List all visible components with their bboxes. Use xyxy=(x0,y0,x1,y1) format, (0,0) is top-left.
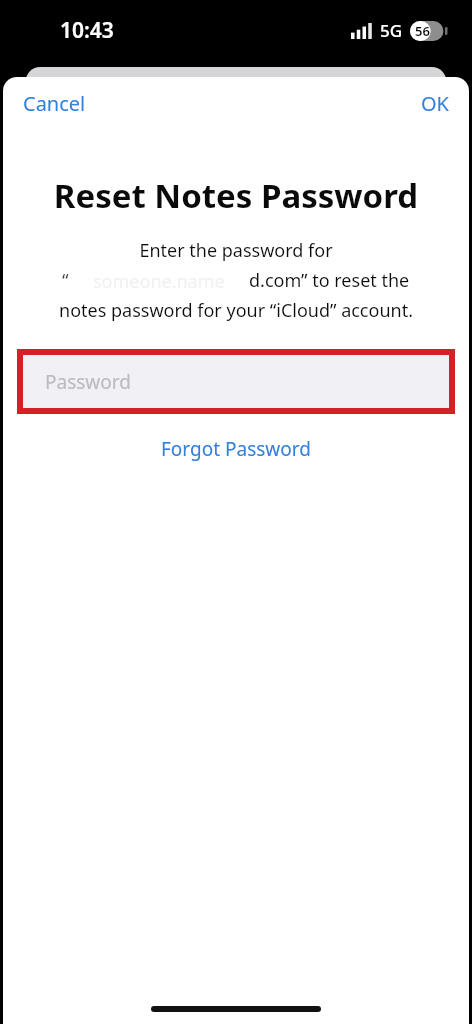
button[interactable]: Cancel xyxy=(3,80,106,127)
staticText: “ xyxy=(62,268,69,293)
staticText: Password xyxy=(45,369,131,395)
other: Cellular signal xyxy=(351,23,373,39)
staticText: 10:43 xyxy=(60,16,114,45)
staticText: Reset Notes Password xyxy=(3,173,469,218)
staticText: OK xyxy=(421,90,449,117)
button[interactable]: Forgot Password xyxy=(141,430,331,468)
staticText: someone.name xyxy=(93,269,225,293)
staticText: 56 xyxy=(415,22,430,40)
other: Battery 56 percent xyxy=(410,21,448,41)
staticText: Cancel xyxy=(23,90,86,117)
staticText: d.com” to reset the xyxy=(249,268,410,293)
staticText: Forgot Password xyxy=(161,436,311,462)
button[interactable]: OK xyxy=(401,80,469,127)
staticText: Enter the password for xyxy=(3,238,469,263)
staticText: notes password for your “iCloud” account… xyxy=(3,298,469,323)
button[interactable]: Password xyxy=(23,355,449,408)
staticText: 5G xyxy=(380,19,403,42)
